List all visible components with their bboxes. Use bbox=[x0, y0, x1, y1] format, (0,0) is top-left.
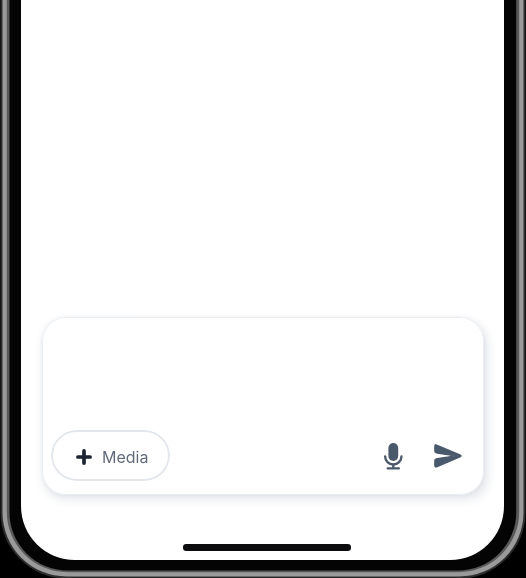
staticText: Media bbox=[102, 447, 149, 466]
button[interactable]: Media bbox=[51, 430, 170, 481]
button[interactable] bbox=[428, 436, 468, 476]
button[interactable] bbox=[373, 436, 413, 476]
button[interactable]: Media bbox=[42, 317, 484, 495]
